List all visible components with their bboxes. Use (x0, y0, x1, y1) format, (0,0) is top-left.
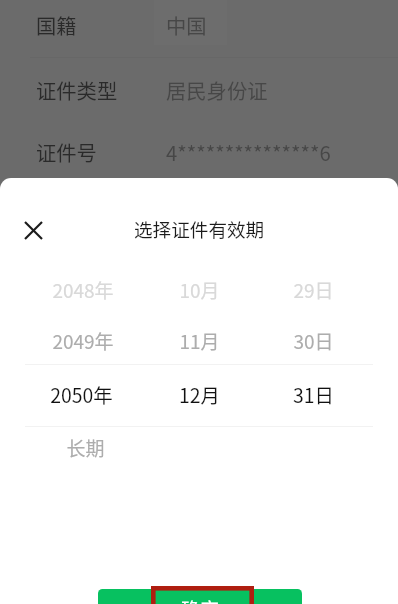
staticText: 中国 (166, 10, 207, 39)
button[interactable]: 2049年 (13, 326, 153, 356)
staticText: 29日 (293, 276, 334, 304)
button[interactable]: 11月 (129, 326, 269, 356)
staticText: 2049年 (52, 327, 114, 355)
button[interactable]: 2048年 (13, 275, 153, 305)
staticText: 长期 (66, 434, 105, 462)
staticText: 30日 (293, 327, 334, 355)
staticText: 2050年 (50, 380, 113, 408)
button[interactable]: 10月 (129, 275, 269, 305)
button[interactable]: Close (18, 215, 49, 246)
staticText: 确定 (181, 595, 220, 604)
button[interactable]: 29日 (243, 275, 383, 305)
button[interactable]: 12月 (129, 379, 269, 409)
staticText: 居民身份证 (166, 75, 268, 104)
staticText: 2048年 (52, 276, 114, 304)
staticText: 4***************6 (166, 137, 331, 166)
button[interactable]: 长期 (15, 433, 155, 463)
button[interactable]: 2050年 (11, 379, 151, 409)
staticText: 证件类型 (36, 75, 118, 104)
staticText: 12月 (179, 380, 220, 408)
button[interactable]: 确定 (98, 589, 302, 604)
staticText: 31日 (293, 380, 334, 408)
staticText: 国籍 (36, 10, 77, 39)
button[interactable]: 31日 (243, 379, 383, 409)
staticText: 选择证件有效期 (134, 215, 265, 242)
button[interactable]: 30日 (243, 326, 383, 356)
staticText: 11月 (179, 327, 220, 355)
staticText: 10月 (179, 276, 220, 304)
staticText: 证件号 (36, 137, 97, 166)
